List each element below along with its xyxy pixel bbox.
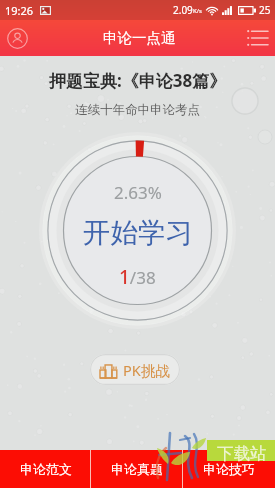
staticText: 1/38: [119, 264, 156, 290]
staticText: 押题宝典:《申论38篇》: [49, 69, 227, 92]
staticText: 下载站: [217, 443, 267, 464]
staticText: 25: [259, 3, 271, 17]
button[interactable]: Profile: [2, 23, 32, 53]
staticText: 连续十年命中申论考点: [75, 102, 200, 118]
staticText: 申论一点通: [103, 29, 176, 47]
staticText: 申论范文: [20, 461, 72, 477]
button[interactable]: 申论真题: [91, 450, 183, 488]
staticText: 申论技巧: [203, 461, 255, 477]
staticText: 申论真题: [111, 461, 163, 477]
staticText: 开始学习: [83, 216, 193, 251]
button[interactable]: Menu: [243, 24, 271, 52]
staticText: PK挑战: [123, 360, 170, 380]
button[interactable]: 申论技巧: [183, 450, 275, 488]
button[interactable]: PK挑战: [90, 354, 180, 385]
staticText: 2.63%: [114, 181, 162, 204]
button[interactable]: 申论范文: [0, 450, 91, 488]
staticText: 2.09: [173, 3, 193, 17]
staticText: K/s: [193, 7, 202, 15]
button[interactable]: 2.63%: [37, 130, 238, 331]
staticText: 19:26: [5, 3, 34, 18]
